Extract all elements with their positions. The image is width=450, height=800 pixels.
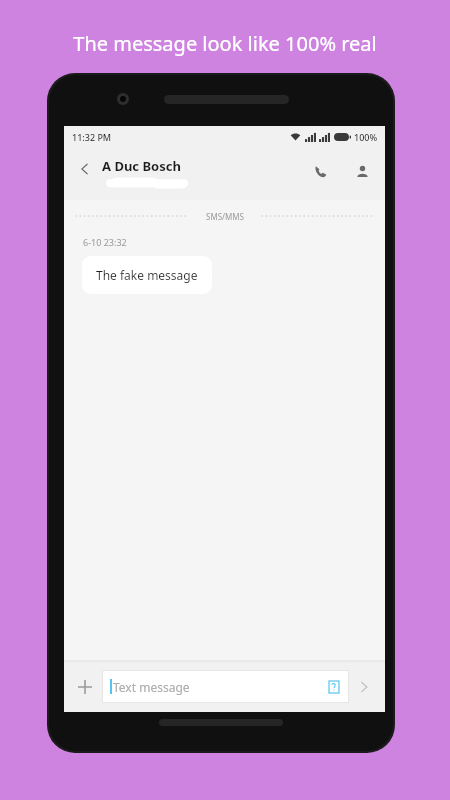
button[interactable]: Back (72, 156, 98, 182)
staticText: 6-10 23:32 (83, 236, 127, 248)
button[interactable]: Contact details (349, 158, 375, 184)
staticText: 100% (354, 131, 378, 143)
button[interactable]: The fake message (82, 256, 212, 294)
button[interactable]: Send (349, 672, 379, 702)
staticText: The fake message (96, 267, 198, 283)
button[interactable]: Add attachment (70, 672, 100, 702)
button[interactable]: Text message (102, 670, 349, 703)
staticText: 11:32 PM (72, 131, 112, 143)
staticText: SMS/MMS (206, 211, 244, 222)
staticText: Text message (113, 679, 318, 695)
button[interactable]: Attach file (318, 670, 349, 703)
staticText: The message look like 100% real (0, 30, 450, 57)
staticText: A Duc Bosch (102, 157, 181, 175)
button[interactable]: Call (307, 158, 333, 184)
